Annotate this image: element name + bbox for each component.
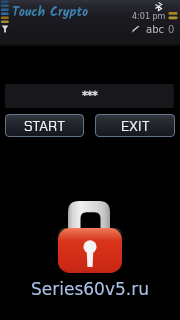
button[interactable]: EXIT (95, 114, 175, 137)
staticText: EXIT (121, 117, 150, 135)
button[interactable]: START (5, 114, 84, 137)
staticText: 0 (168, 24, 175, 36)
staticText: Touch Crypto (12, 2, 89, 23)
staticText: Series60v5.ru (0, 279, 180, 299)
staticText: abc (146, 24, 164, 36)
staticText: START (24, 117, 66, 135)
other: Locked (57, 199, 123, 274)
button[interactable]: *** (5, 84, 174, 108)
staticText: 4:01 pm (132, 12, 166, 21)
other: Bluetooth (154, 2, 163, 11)
staticText: *** (82, 89, 98, 102)
